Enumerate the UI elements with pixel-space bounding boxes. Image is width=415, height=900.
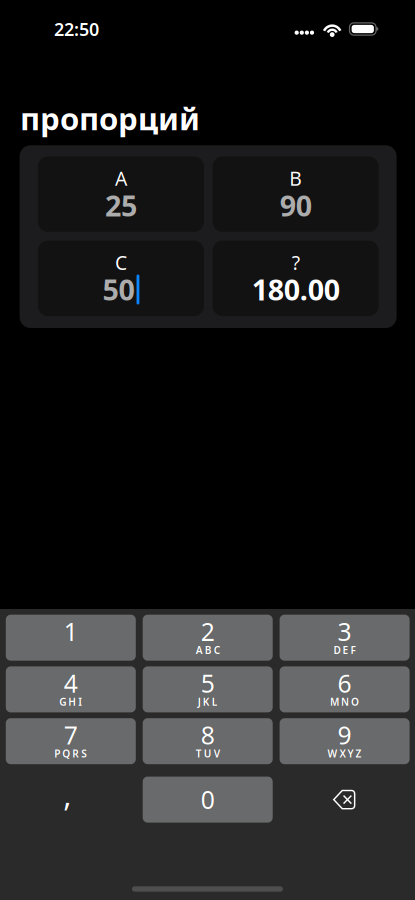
staticText: 22:50 bbox=[54, 17, 99, 41]
staticText: ? bbox=[292, 249, 300, 275]
button[interactable]: C bbox=[38, 241, 204, 316]
staticText: A B C bbox=[196, 643, 220, 657]
staticText: , bbox=[63, 774, 71, 815]
staticText: W X Y Z bbox=[328, 747, 362, 760]
staticText: 6 bbox=[338, 666, 352, 700]
staticText: 25 bbox=[105, 186, 137, 225]
staticText: T U V bbox=[196, 747, 220, 760]
staticText: 7 bbox=[64, 718, 78, 752]
button[interactable]: 4 bbox=[6, 666, 136, 712]
staticText: 0 bbox=[201, 783, 215, 816]
button[interactable]: B bbox=[213, 156, 379, 232]
button[interactable]: 8 bbox=[143, 718, 273, 764]
staticText: 8 bbox=[201, 718, 215, 752]
button[interactable]: 3 bbox=[280, 615, 410, 661]
button[interactable]: 7 bbox=[6, 718, 136, 764]
button[interactable]: 2 bbox=[143, 615, 273, 661]
button[interactable]: 5 bbox=[143, 666, 273, 712]
button[interactable]: 6 bbox=[280, 666, 410, 712]
staticText: 1 bbox=[64, 615, 78, 648]
button[interactable]: A bbox=[38, 156, 204, 232]
button[interactable]: Decimal separator bbox=[6, 777, 136, 823]
staticText: B bbox=[289, 165, 302, 191]
staticText: A bbox=[115, 165, 127, 191]
staticText: M N O bbox=[330, 695, 359, 709]
staticText: J K L bbox=[198, 695, 218, 709]
staticText: 180.00 bbox=[252, 270, 340, 309]
staticText: 9 bbox=[338, 718, 352, 752]
staticText: 50 bbox=[103, 270, 135, 309]
staticText: G H I bbox=[59, 695, 82, 709]
staticText: 90 bbox=[280, 186, 312, 225]
button[interactable]: ? bbox=[213, 241, 379, 316]
staticText: 5 bbox=[201, 666, 215, 700]
button[interactable]: Delete bbox=[280, 777, 410, 823]
staticText: P Q R S bbox=[54, 747, 87, 760]
button[interactable]: 9 bbox=[280, 718, 410, 764]
staticText: 2 bbox=[201, 615, 215, 648]
staticText: D E F bbox=[334, 643, 356, 657]
staticText: пропорций bbox=[20, 97, 200, 139]
button[interactable]: 0 bbox=[143, 777, 273, 823]
staticText: 4 bbox=[64, 666, 78, 700]
staticText: 3 bbox=[338, 615, 352, 648]
button[interactable]: 1 bbox=[6, 615, 136, 661]
staticText: C bbox=[115, 249, 127, 275]
